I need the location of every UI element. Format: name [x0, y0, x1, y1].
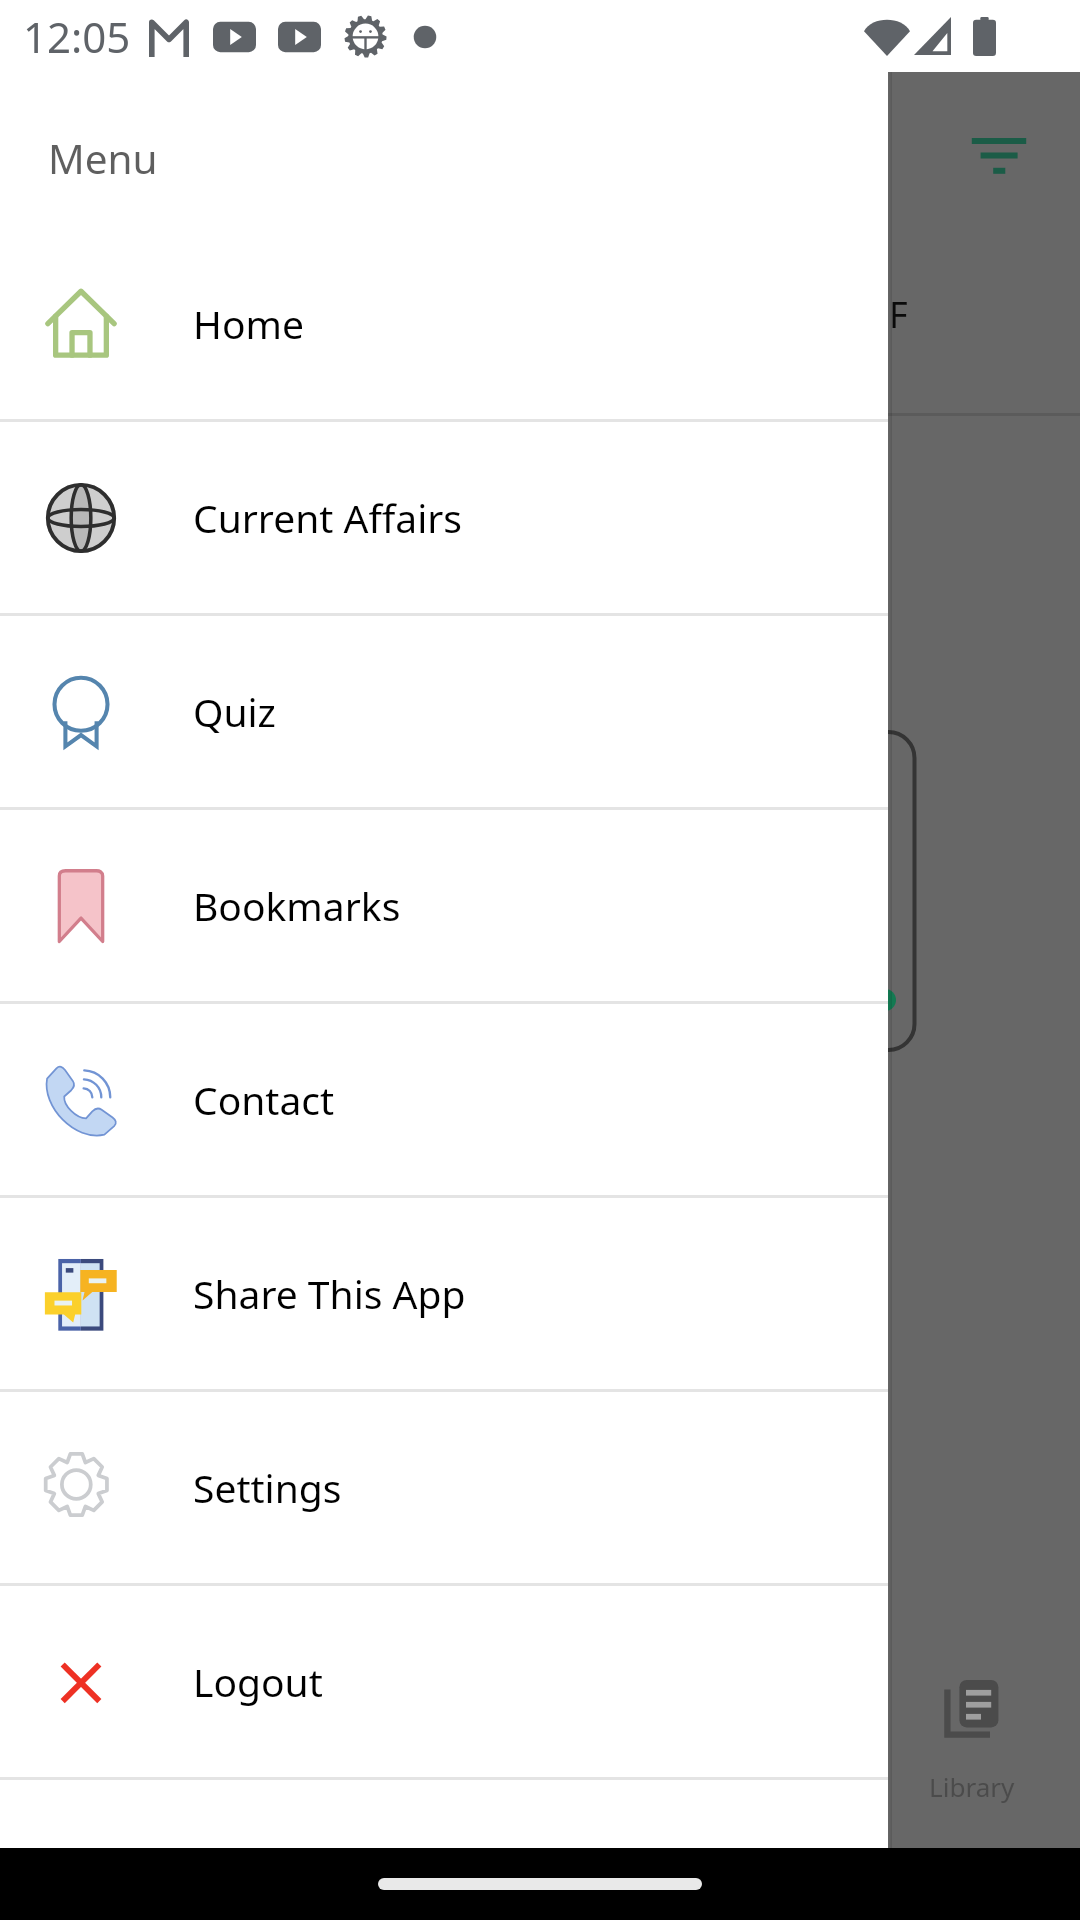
staticText: Share This App: [193, 1267, 466, 1320]
staticText: Menu: [48, 131, 158, 186]
button[interactable]: Logout: [0, 1586, 888, 1777]
staticText: Settings: [193, 1461, 342, 1514]
button[interactable]: Home: [0, 228, 888, 419]
staticText: Current Affairs: [193, 491, 462, 544]
staticText: 12:05: [23, 8, 131, 65]
staticText: Logout: [193, 1655, 323, 1708]
button[interactable]: Share This App: [0, 1198, 888, 1389]
button[interactable]: Quiz: [0, 616, 888, 807]
button[interactable]: Library: [900, 1632, 1044, 1832]
staticText: Home: [193, 297, 304, 350]
staticText: Quiz: [193, 685, 276, 738]
staticText: Library: [929, 1769, 1015, 1805]
button[interactable]: Current Affairs: [0, 422, 888, 613]
button[interactable]: Filter: [951, 114, 1047, 210]
button[interactable]: Bookmarks: [0, 810, 888, 1001]
staticText: F: [889, 290, 908, 339]
button[interactable]: Contact: [0, 1004, 888, 1195]
staticText: Contact: [193, 1073, 335, 1126]
button[interactable]: Settings: [0, 1392, 888, 1583]
staticText: Bookmarks: [193, 879, 401, 932]
